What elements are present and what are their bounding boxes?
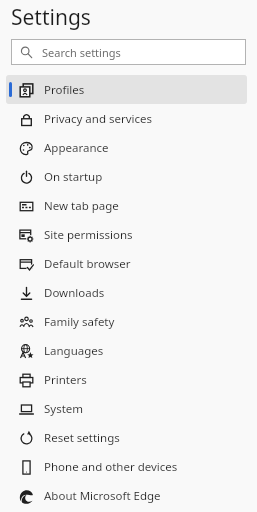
staticText: Reset settings (44, 430, 120, 446)
staticText: About Microsoft Edge (44, 488, 161, 504)
staticText: Phone and other devices (44, 459, 178, 475)
button[interactable]: Languages (6, 336, 247, 365)
button[interactable]: Site permissions (6, 220, 247, 249)
button[interactable]: Printers (6, 365, 247, 394)
button[interactable]: Downloads (6, 278, 247, 307)
staticText: Privacy and services (44, 111, 153, 127)
button[interactable]: Reset settings (6, 423, 247, 452)
staticText: Settings (11, 3, 91, 32)
staticText: Downloads (44, 285, 105, 301)
button[interactable]: Search settings (11, 39, 246, 65)
staticText: Profiles (44, 82, 85, 98)
button[interactable]: Family safety (6, 307, 247, 336)
staticText: Appearance (44, 140, 109, 156)
staticText: System (44, 401, 84, 417)
staticText: Search settings (42, 45, 121, 60)
button[interactable]: New tab page (6, 191, 247, 220)
button[interactable]: Appearance (6, 133, 247, 162)
button[interactable]: Privacy and services (6, 104, 247, 133)
staticText: Default browser (44, 256, 131, 272)
button[interactable]: Phone and other devices (6, 452, 247, 481)
staticText: Family safety (44, 314, 115, 330)
button[interactable]: About Microsoft Edge (6, 481, 247, 510)
button[interactable]: On startup (6, 162, 247, 191)
button[interactable]: Profiles (6, 75, 247, 104)
staticText: New tab page (44, 198, 119, 214)
button[interactable]: Default browser (6, 249, 247, 278)
staticText: Site permissions (44, 227, 133, 243)
staticText: Languages (44, 343, 104, 359)
staticText: On startup (44, 169, 103, 185)
button[interactable]: System (6, 394, 247, 423)
staticText: Printers (44, 372, 87, 388)
